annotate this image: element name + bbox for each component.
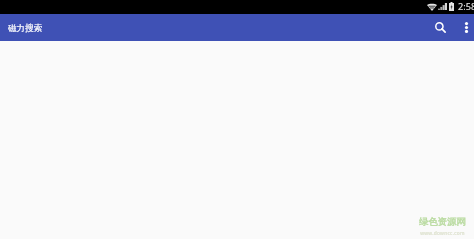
staticText: 绿色资源网 [419, 216, 466, 228]
staticText: 磁力搜索 [8, 23, 43, 34]
button[interactable]: Search [430, 14, 451, 41]
button[interactable]: More options [456, 14, 474, 41]
staticText: www.downcc.com [420, 230, 465, 237]
staticText: 2:58 [458, 0, 474, 13]
button[interactable]: 绿色资源网 [419, 216, 474, 239]
